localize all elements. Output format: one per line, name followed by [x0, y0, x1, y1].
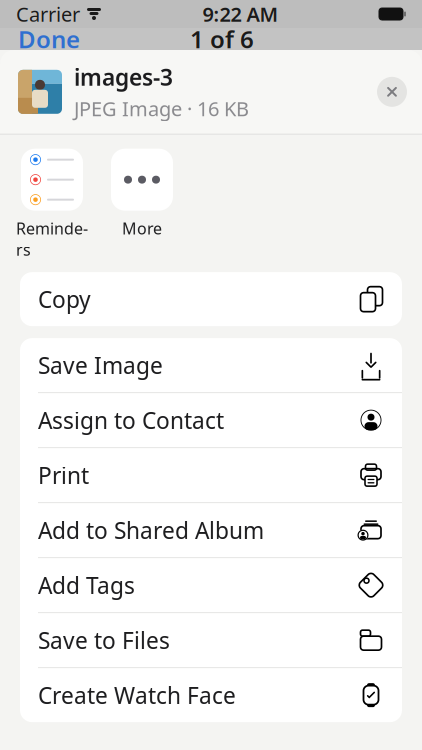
staticText: Reminders: [16, 218, 88, 260]
staticText: images-3: [74, 62, 173, 92]
button[interactable]: Save to Files: [20, 613, 402, 667]
button[interactable]: Print: [20, 448, 402, 502]
staticText: JPEG Image · 16 KB: [74, 95, 249, 122]
staticText: Copy: [38, 284, 91, 314]
button[interactable]: Close: [370, 70, 414, 114]
button[interactable]: Copy: [20, 272, 402, 326]
button[interactable]: Assign to Contact: [20, 393, 402, 447]
button[interactable]: Add Tags: [20, 558, 402, 612]
staticText: 1 of 6: [190, 23, 254, 55]
button[interactable]: Reminders: [14, 149, 90, 260]
staticText: Add Tags: [38, 570, 135, 600]
staticText: Print: [38, 460, 89, 490]
staticText: Create Watch Face: [38, 680, 236, 710]
button[interactable]: Save Image: [20, 338, 402, 392]
staticText: Carrier: [16, 1, 80, 27]
button[interactable]: Create Watch Face: [20, 668, 402, 722]
staticText: 9:22 AM: [202, 1, 278, 27]
staticText: More: [122, 218, 162, 239]
staticText: Save Image: [38, 350, 163, 380]
staticText: Assign to Contact: [38, 405, 224, 435]
button[interactable]: More: [104, 149, 180, 239]
staticText: Save to Files: [38, 625, 170, 655]
staticText: Done: [18, 23, 80, 55]
staticText: Add to Shared Album: [38, 515, 264, 545]
button[interactable]: Add to Shared Album: [20, 503, 402, 557]
